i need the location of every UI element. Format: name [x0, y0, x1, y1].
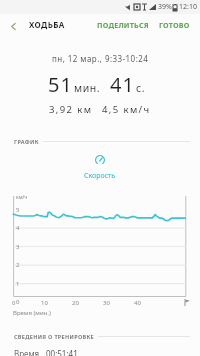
staticText: ХОДЬБА — [29, 19, 65, 30]
staticText: Время (мин.) — [13, 309, 51, 317]
staticText: 30 — [103, 299, 110, 307]
staticText: пн, 12 мар., 9:33-10:24 — [52, 53, 149, 64]
staticText: 39% — [158, 2, 172, 12]
staticText: с. — [136, 81, 146, 95]
staticText: 4 — [16, 224, 20, 232]
staticText: мин. — [74, 81, 101, 95]
staticText: ГОТОВО — [159, 20, 190, 30]
staticText: 0 — [12, 299, 16, 307]
staticText: 51 — [48, 71, 73, 98]
staticText: ГРАФИК — [14, 138, 39, 145]
staticText: 00:51:41 — [46, 348, 78, 356]
staticText: 1 — [16, 280, 20, 288]
staticText: 10 — [41, 299, 48, 307]
button[interactable]: ГОТОВО — [153, 16, 196, 34]
button[interactable]: ПОДЕЛИТЬСЯ — [91, 16, 155, 34]
staticText: 12:10 — [179, 2, 197, 12]
staticText: 4,5 км/ч — [102, 103, 151, 116]
staticText: 20 — [72, 299, 79, 307]
staticText: ПОДЕЛИТЬСЯ — [97, 20, 149, 30]
staticText: 40 — [134, 299, 141, 307]
staticText: 3,92 км — [49, 103, 93, 116]
staticText: 5 — [16, 206, 20, 214]
staticText: СВЕДЕНИЯ О ТРЕНИРОВКЕ — [14, 333, 94, 340]
staticText: км/ч — [16, 194, 28, 201]
staticText: 2 — [16, 261, 20, 269]
staticText: Скорость — [84, 171, 116, 181]
staticText: Время — [14, 348, 40, 356]
button[interactable]: Назад — [4, 17, 22, 35]
staticText: 0 — [16, 298, 20, 306]
staticText: 41 — [110, 71, 135, 98]
staticText: 3 — [16, 243, 20, 251]
